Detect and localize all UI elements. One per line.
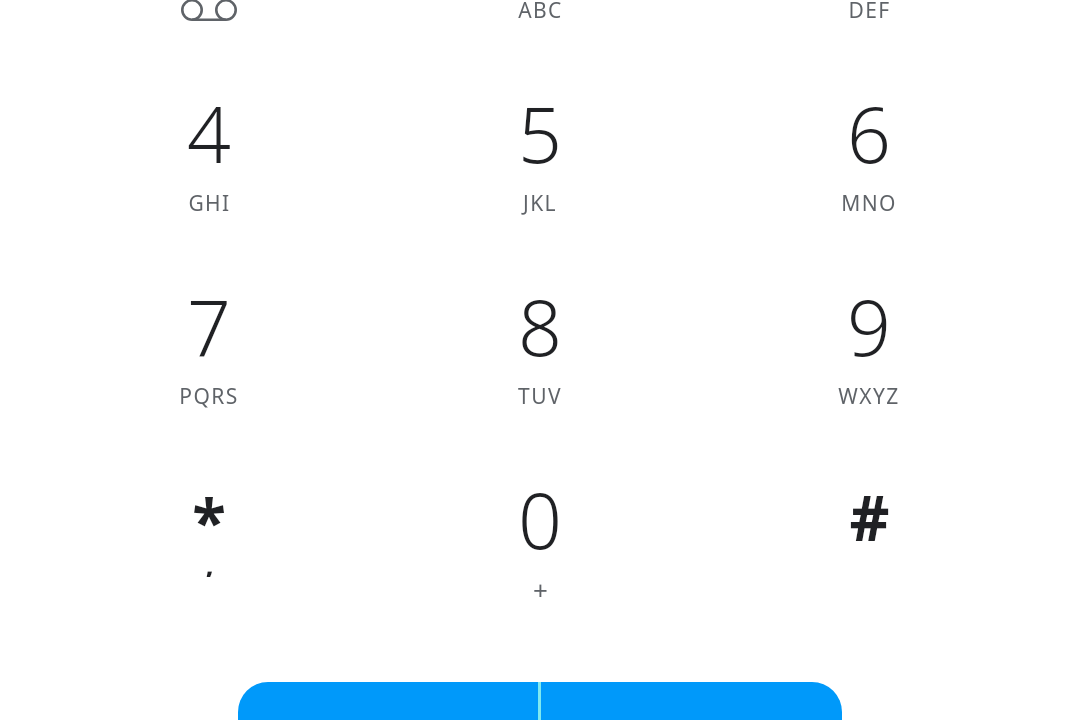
staticText: 0 [518, 467, 562, 572]
button[interactable]: 8 [430, 274, 650, 444]
staticText: ABC [518, 0, 563, 25]
staticText: GHI [188, 189, 231, 218]
staticText: 6 [847, 81, 891, 186]
button[interactable]: 1 [99, 0, 319, 58]
staticText: 9 [847, 274, 891, 379]
button[interactable]: 6 [759, 81, 979, 251]
staticText: JKL [523, 189, 557, 218]
button[interactable]: 0 [430, 467, 650, 637]
staticText: WXYZ [838, 382, 900, 411]
staticText: MNO [841, 189, 897, 218]
button[interactable]: 4 [99, 81, 319, 251]
staticText: 5 [518, 81, 562, 186]
button[interactable]: 9 [759, 274, 979, 444]
button[interactable]: * [99, 467, 319, 637]
staticText: , [205, 543, 214, 577]
button[interactable]: 7 [99, 274, 319, 444]
staticText: 8 [518, 274, 562, 379]
button[interactable]: 5 [430, 81, 650, 251]
button[interactable]: 3 [759, 0, 979, 58]
staticText: + [533, 572, 548, 606]
staticText: 7 [187, 274, 231, 379]
staticText: # [849, 475, 890, 559]
button[interactable]: Call options [541, 682, 842, 720]
staticText: 4 [187, 81, 231, 186]
staticText: PQRS [179, 382, 239, 411]
staticText: * [192, 479, 226, 563]
staticText: DEF [848, 0, 891, 25]
staticText: TUV [518, 382, 562, 411]
button[interactable]: # [759, 467, 979, 637]
button[interactable]: 2 [430, 0, 650, 58]
button[interactable]: Call [238, 682, 538, 720]
